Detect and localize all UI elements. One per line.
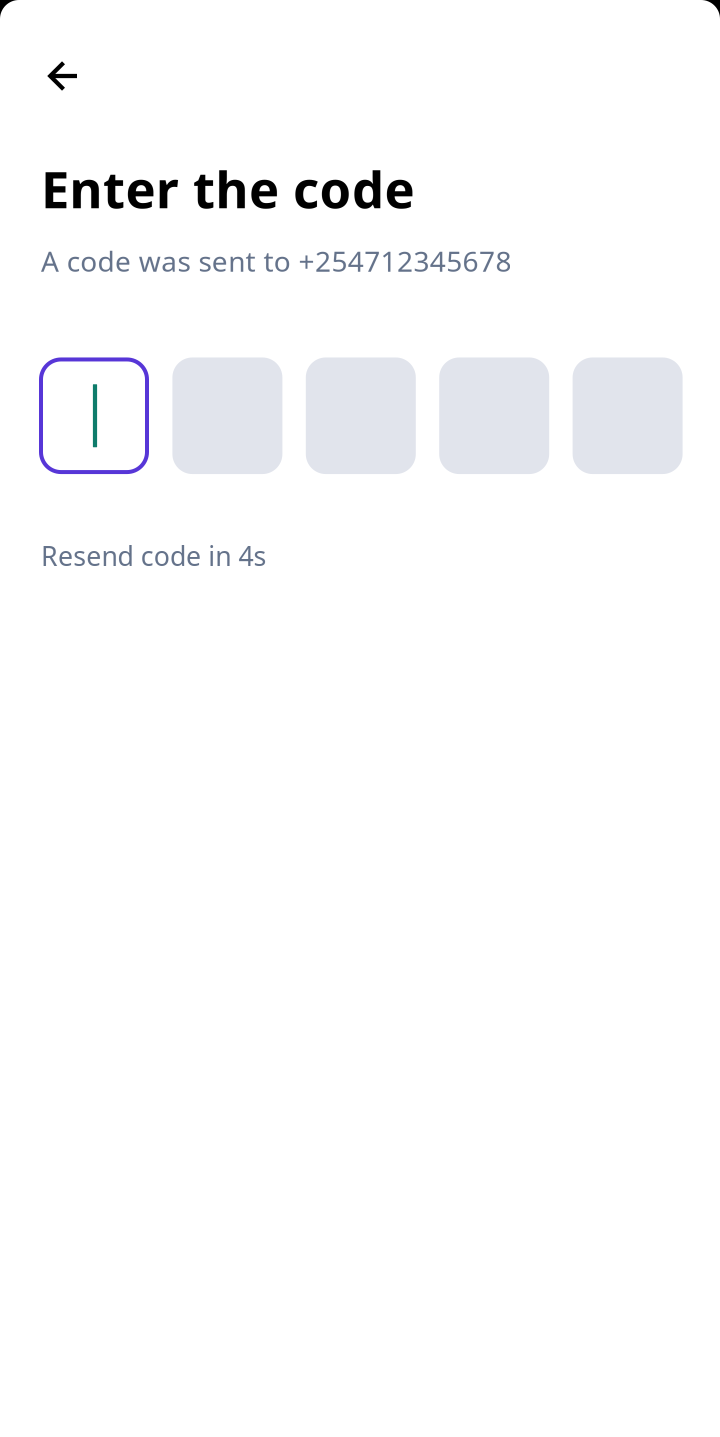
button[interactable]: Resend code in 4s [41,538,267,573]
staticText: A code was sent to +254712345678 [41,242,511,279]
staticText: Resend code in 4s [41,538,267,573]
button[interactable]: Back [40,53,86,99]
button[interactable]: Verification code [39,357,683,474]
staticText: Enter the code [41,155,414,222]
